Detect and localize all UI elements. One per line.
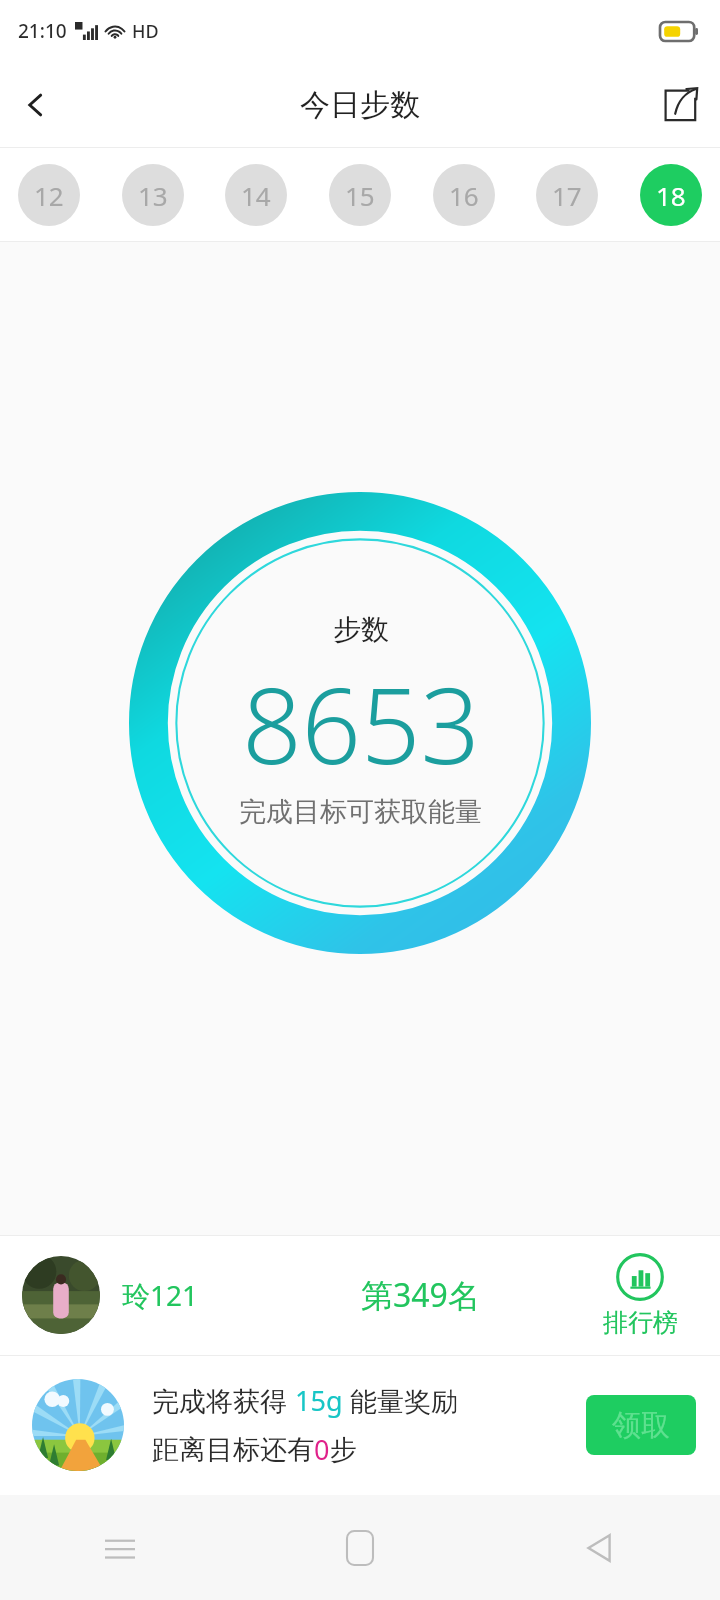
staticText: 能量奖励: [343, 1382, 459, 1419]
button[interactable]: Back: [552, 1500, 648, 1596]
staticText: 步数: [333, 612, 389, 647]
button[interactable]: 领取: [586, 1395, 696, 1455]
staticText: 步: [330, 1433, 357, 1467]
staticText: 13: [138, 178, 168, 213]
staticText: 排行榜: [603, 1307, 678, 1338]
staticText: 领取: [612, 1407, 670, 1444]
staticText: 18: [656, 178, 686, 213]
button[interactable]: 13: [122, 164, 184, 226]
staticText: 距离目标还有: [152, 1433, 314, 1467]
staticText: 第349名: [361, 1273, 480, 1317]
button[interactable]: 排行榜: [560, 1235, 720, 1355]
button[interactable]: 第349名: [280, 1235, 560, 1355]
staticText: 玲121: [122, 1276, 199, 1314]
button[interactable]: 12: [18, 164, 80, 226]
button[interactable]: 15: [329, 164, 391, 226]
staticText: 15: [345, 178, 375, 213]
button[interactable]: Recents: [72, 1500, 168, 1596]
staticText: 0: [314, 1431, 330, 1468]
staticText: 今日步数: [300, 86, 420, 124]
button[interactable]: Home: [312, 1500, 408, 1596]
button[interactable]: 玲121: [0, 1235, 280, 1355]
button[interactable]: 17: [536, 164, 598, 226]
staticText: 14: [241, 178, 271, 213]
button[interactable]: 18: [640, 164, 702, 226]
button[interactable]: 14: [225, 164, 287, 226]
staticText: 12: [34, 178, 64, 213]
staticText: 8653: [242, 653, 480, 795]
staticText: 16: [449, 178, 479, 213]
staticText: 17: [552, 178, 582, 213]
staticText: 15g: [295, 1382, 343, 1419]
staticText: 完成将获得: [152, 1382, 295, 1419]
button[interactable]: Back: [0, 69, 72, 141]
staticText: HD: [132, 19, 159, 44]
button[interactable]: Share: [640, 65, 720, 145]
staticText: 完成目标可获取能量: [239, 795, 482, 829]
staticText: 21:10: [18, 18, 67, 44]
button[interactable]: 16: [433, 164, 495, 226]
